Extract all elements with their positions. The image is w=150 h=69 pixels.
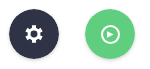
button[interactable]: Play	[85, 9, 135, 59]
button[interactable]: Settings	[9, 9, 59, 59]
